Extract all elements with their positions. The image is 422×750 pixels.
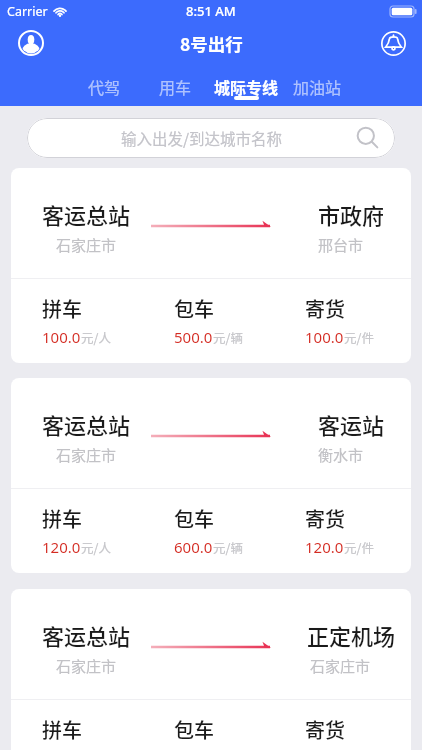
staticText: 拼车 xyxy=(42,504,82,533)
button[interactable]: 输入出发/到达城市名称 xyxy=(27,118,395,158)
staticText: 加油站 xyxy=(293,75,342,98)
staticText: 输入出发/到达城市名称 xyxy=(121,127,283,149)
button[interactable]: Notifications xyxy=(371,22,415,64)
staticText: 8:51 AM xyxy=(186,2,236,20)
staticText: 包车 xyxy=(174,294,214,323)
staticText: 石家庄市 xyxy=(56,234,117,256)
staticText: 城际专线 xyxy=(214,75,279,98)
staticText: 正定机场 xyxy=(307,619,396,651)
button[interactable]: 加油站 xyxy=(282,75,353,102)
staticText: 寄货 xyxy=(305,715,345,744)
staticText: 元/件 xyxy=(344,328,374,346)
staticText: 衡水市 xyxy=(318,444,364,466)
staticText: 寄货 xyxy=(305,504,345,533)
staticText: 100.0 xyxy=(42,327,81,347)
button[interactable]: 客运总站 xyxy=(11,168,411,363)
staticText: 拼车 xyxy=(42,715,82,744)
button[interactable]: 客运总站 xyxy=(11,378,411,573)
button[interactable]: 代驾 xyxy=(69,75,140,102)
button[interactable]: 客运总站 xyxy=(11,589,411,750)
staticText: 石家庄市 xyxy=(56,444,117,466)
staticText: 石家庄市 xyxy=(56,655,117,677)
staticText: 客运总站 xyxy=(42,408,131,440)
staticText: 包车 xyxy=(174,715,214,744)
staticText: Carrier xyxy=(7,3,48,20)
staticText: 用车 xyxy=(159,75,192,98)
staticText: 拼车 xyxy=(42,294,82,323)
staticText: 代驾 xyxy=(88,75,121,98)
staticText: 包车 xyxy=(174,504,214,533)
staticText: 8号出行 xyxy=(180,31,243,56)
staticText: 元/人 xyxy=(81,538,111,556)
staticText: 客运总站 xyxy=(42,619,131,651)
staticText: 120.0 xyxy=(305,537,344,557)
staticText: 市政府 xyxy=(318,198,385,230)
button[interactable]: Profile xyxy=(9,22,53,64)
staticText: 邢台市 xyxy=(318,234,364,256)
staticText: 客运站 xyxy=(318,408,385,440)
staticText: 寄货 xyxy=(305,294,345,323)
staticText: 元/辆 xyxy=(213,538,243,556)
button[interactable]: 用车 xyxy=(140,75,211,102)
staticText: 元/人 xyxy=(81,328,111,346)
staticText: 石家庄市 xyxy=(310,655,371,677)
staticText: 客运总站 xyxy=(42,198,131,230)
staticText: 100.0 xyxy=(305,327,344,347)
button[interactable]: 城际专线 xyxy=(211,75,282,102)
staticText: 500.0 xyxy=(174,327,213,347)
staticText: 元/件 xyxy=(344,538,374,556)
staticText: 元/辆 xyxy=(213,328,243,346)
staticText: 120.0 xyxy=(42,537,81,557)
staticText: 600.0 xyxy=(174,537,213,557)
